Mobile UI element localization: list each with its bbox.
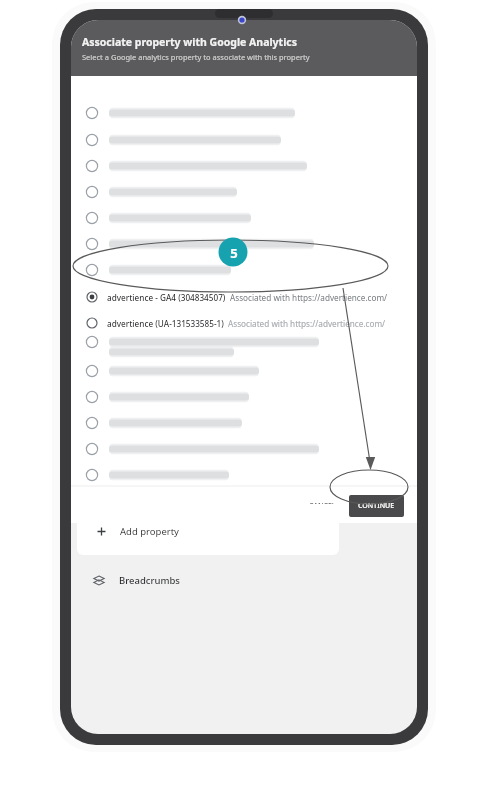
button[interactable]: advertience - GA4 (304834507) [71, 287, 417, 307]
staticText: CONTINUE [358, 501, 395, 511]
button[interactable]: Breadcrumbs layers [77, 565, 339, 595]
staticText: Associated with https://advertience.com/ [228, 318, 386, 329]
staticText: advertience - GA4 (304834507) [107, 292, 226, 303]
button[interactable]: Add property [77, 504, 339, 555]
staticText: Add property [120, 525, 179, 538]
staticText: advertience (UA-131533585-1) [107, 318, 224, 329]
button[interactable]: advertience (UA-131533585-1) [71, 313, 417, 333]
staticText: Select a Google analytics property to as… [82, 52, 310, 62]
other: Breadcrumbs layers [93, 574, 105, 586]
button[interactable]: CONTINUE [349, 495, 404, 517]
staticText: 5 [230, 244, 238, 262]
staticText: Associated with https://advertience.com/ [230, 292, 388, 303]
button[interactable]: CANCEL [302, 496, 343, 516]
staticText: Associate property with Google Analytics [82, 35, 297, 49]
staticText: Breadcrumbs [119, 574, 180, 587]
staticText: CANCEL [309, 501, 336, 511]
